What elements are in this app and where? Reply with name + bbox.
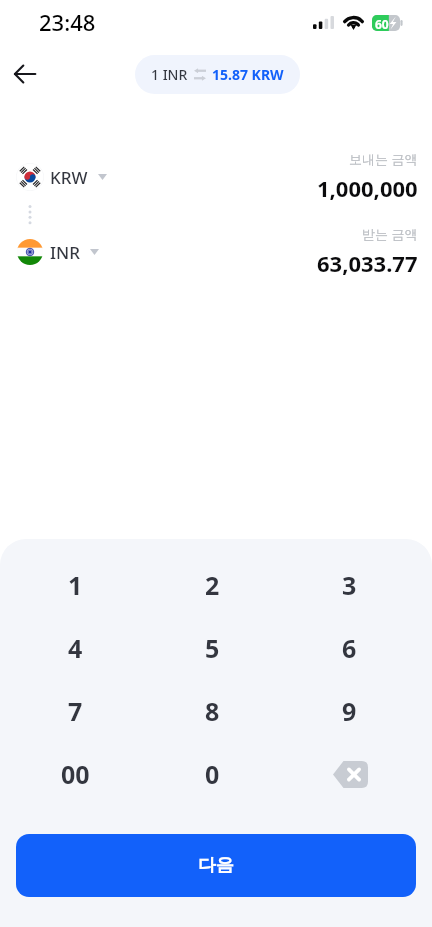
staticText: 6 — [342, 631, 357, 665]
button[interactable]: 다음 — [16, 834, 416, 897]
staticText: 2 — [205, 568, 220, 602]
staticText: 받는 금액 — [362, 225, 418, 243]
button[interactable]: 3 — [281, 553, 418, 616]
staticText: 4 — [68, 631, 83, 665]
staticText: 1 INR — [151, 65, 188, 84]
button[interactable]: 8 — [144, 679, 281, 742]
button[interactable]: 1 — [6, 553, 144, 616]
staticText: 63,033.77 — [317, 248, 418, 278]
staticText: 다음 — [198, 854, 234, 877]
button[interactable]: Back — [5, 54, 45, 94]
staticText: 00 — [61, 757, 90, 791]
staticText: 15.87 KRW — [212, 65, 284, 84]
button[interactable]: 7 — [6, 679, 144, 742]
staticText: INR — [50, 241, 80, 264]
button[interactable]: 9 — [281, 679, 418, 742]
staticText: 7 — [68, 694, 83, 728]
other: Backspace — [328, 752, 372, 796]
staticText: 1,000,000 — [317, 173, 418, 203]
staticText: KRW — [50, 166, 88, 189]
button[interactable]: 0 — [144, 742, 281, 805]
staticText: 1 — [68, 568, 83, 602]
button[interactable]: 00 — [6, 742, 144, 805]
staticText: 8 — [205, 694, 220, 728]
staticText: 5 — [205, 631, 220, 665]
button[interactable]: 2 — [144, 553, 281, 616]
staticText: 60 — [375, 16, 389, 32]
button[interactable]: 1 INR — [135, 55, 300, 94]
button[interactable]: KRW — [10, 159, 113, 195]
button[interactable]: INR — [10, 234, 105, 270]
button[interactable]: Backspace — [281, 742, 418, 805]
staticText: 23:48 — [39, 7, 96, 37]
staticText: 9 — [342, 694, 357, 728]
staticText: 0 — [205, 757, 220, 791]
button[interactable]: 6 — [281, 616, 418, 679]
staticText: 보내는 금액 — [349, 150, 418, 168]
button[interactable]: 4 — [6, 616, 144, 679]
button[interactable]: 5 — [144, 616, 281, 679]
staticText: 3 — [342, 568, 357, 602]
